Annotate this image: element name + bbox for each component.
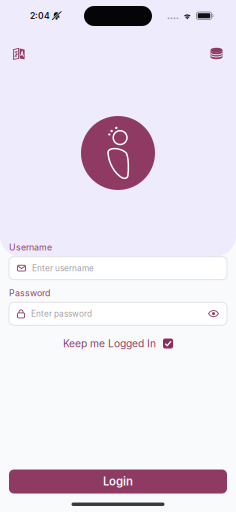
staticText: Enter password (31, 309, 92, 319)
button[interactable]: Keep me Logged In (60, 334, 176, 353)
button[interactable]: Language (9, 43, 29, 64)
staticText: Username (9, 242, 52, 253)
button[interactable]: Login (9, 469, 227, 493)
staticText: 2:04 (30, 11, 50, 21)
staticText: Enter username (32, 263, 94, 273)
button[interactable]: Server (206, 43, 227, 64)
staticText: Password (9, 288, 50, 298)
staticText: Login (103, 475, 133, 488)
staticText: Keep me Logged In (63, 337, 156, 350)
